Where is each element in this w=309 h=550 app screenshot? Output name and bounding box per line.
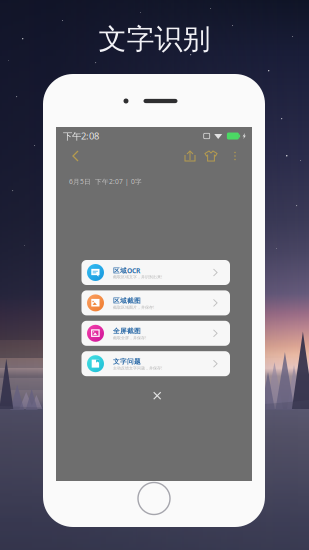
staticText: 截取区域文字，并识别出来! xyxy=(113,274,162,279)
staticText: 全屏截图 xyxy=(113,327,141,335)
button[interactable]: 区域OCR xyxy=(81,260,230,285)
button[interactable]: Close xyxy=(150,389,164,402)
button[interactable]: 区域截图 xyxy=(81,290,230,315)
staticText: 区域截图 xyxy=(113,297,141,305)
button[interactable]: 文字问题 xyxy=(81,351,230,376)
staticText: 主动反馈文字问题，并保存! xyxy=(113,365,162,371)
button[interactable]: Theme xyxy=(204,148,220,164)
staticText: 截取区域图片，并保存! xyxy=(113,305,154,310)
staticText: 文字问题 xyxy=(113,357,141,366)
staticText: 区域OCR xyxy=(113,266,140,275)
button[interactable]: Share xyxy=(183,148,199,164)
button[interactable]: More options xyxy=(229,148,241,164)
staticText: 下午2:08 xyxy=(63,130,99,142)
staticText: 截取全屏，并保存! xyxy=(113,335,146,340)
staticText: 6月5日 下午2:07 | 0字 xyxy=(69,177,142,186)
staticText: 文字识别 xyxy=(98,22,210,56)
button[interactable]: 全屏截图 xyxy=(81,321,230,346)
button[interactable]: Back xyxy=(68,148,84,164)
